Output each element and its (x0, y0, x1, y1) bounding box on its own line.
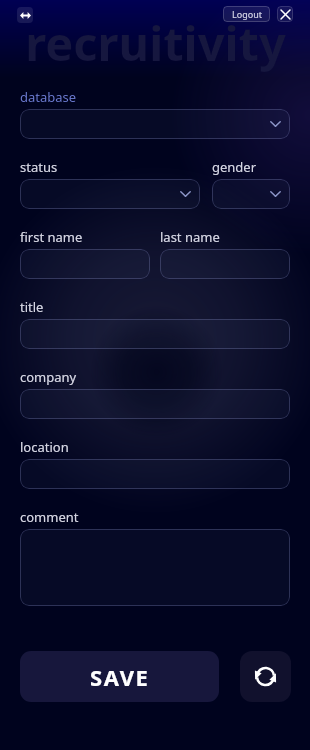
staticText: company (20, 368, 77, 386)
button[interactable] (20, 109, 290, 139)
staticText: recruitivity (25, 11, 286, 75)
staticText: last name (160, 228, 220, 246)
button[interactable] (20, 459, 290, 489)
button[interactable]: Close (277, 6, 293, 22)
staticText: database (20, 88, 77, 106)
staticText: title (20, 298, 44, 316)
button[interactable]: SAVE (20, 651, 219, 702)
button[interactable] (212, 179, 290, 209)
staticText: gender (212, 158, 257, 176)
staticText: status (20, 158, 58, 176)
button[interactable] (160, 249, 290, 279)
staticText: first name (20, 228, 83, 246)
staticText: Logout (232, 8, 262, 20)
staticText: location (20, 438, 69, 456)
button[interactable] (20, 529, 290, 606)
button[interactable]: Resize (17, 7, 33, 23)
button[interactable]: Logout (223, 6, 270, 22)
button[interactable] (20, 249, 150, 279)
button[interactable] (20, 319, 290, 349)
button[interactable]: Refresh (240, 651, 291, 702)
button[interactable] (20, 179, 200, 209)
staticText: SAVE (90, 662, 150, 692)
staticText: comment (20, 508, 79, 526)
button[interactable] (20, 389, 290, 419)
